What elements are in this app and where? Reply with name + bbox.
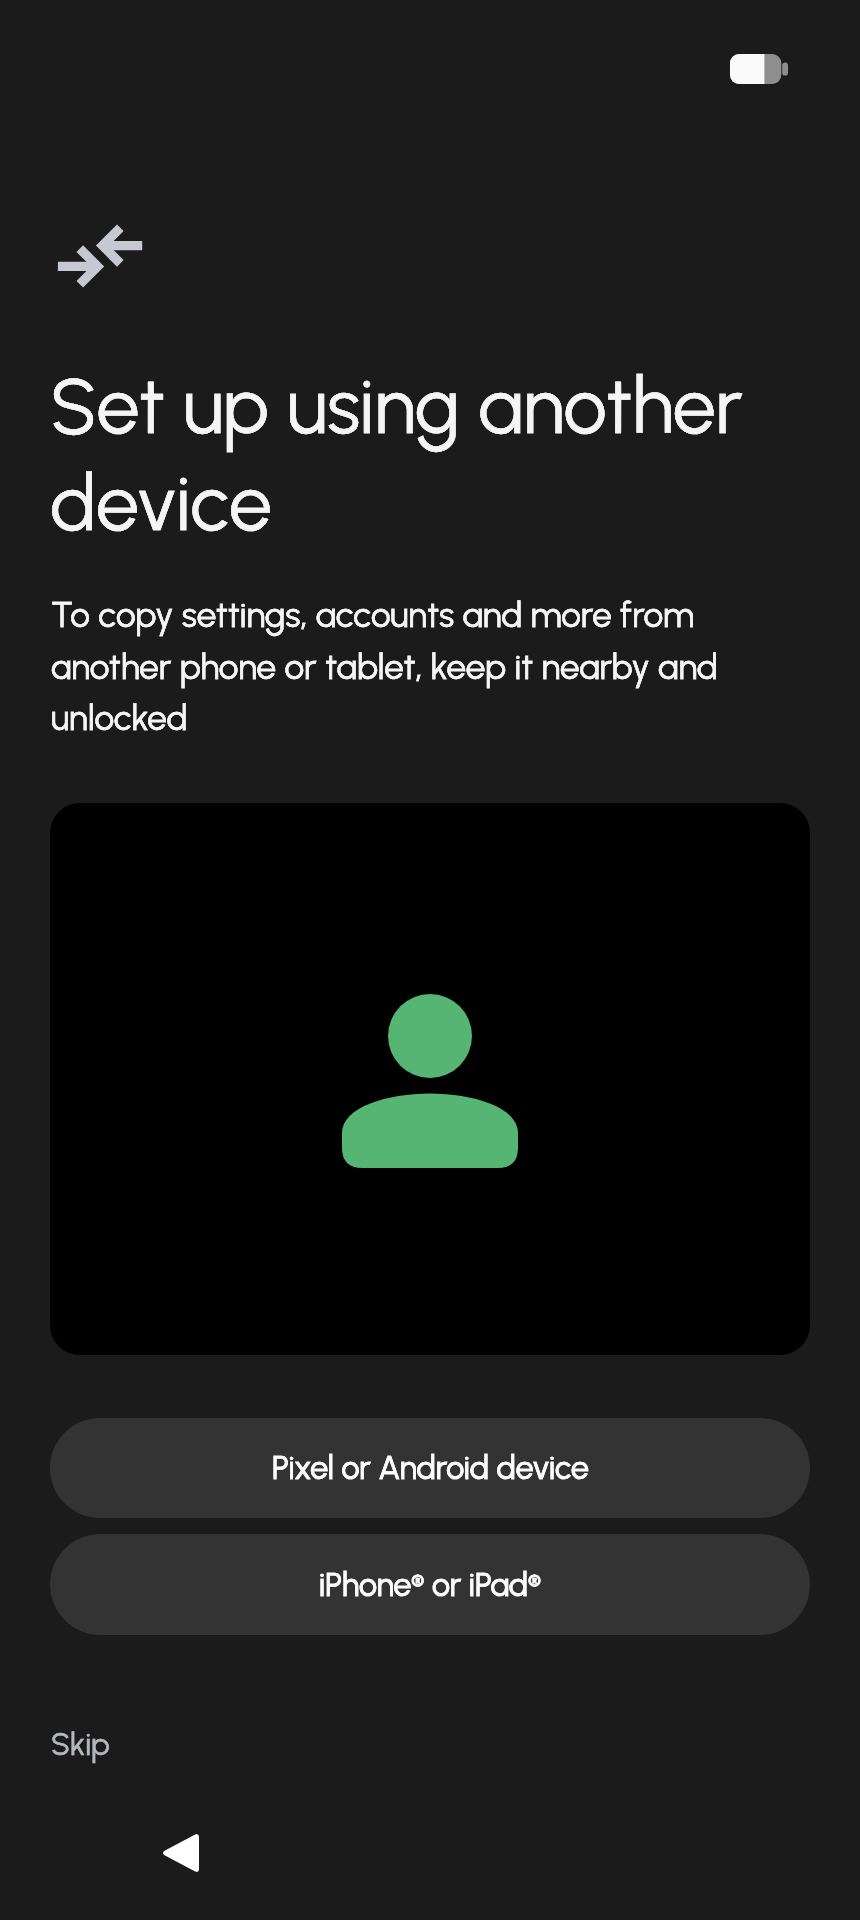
staticText: To copy settings, accounts and more from… — [51, 594, 741, 739]
button[interactable]: Skip — [36, 1716, 125, 1773]
button[interactable]: Pixel or Android device — [50, 1418, 810, 1518]
staticText: Pixel or Android device — [272, 1449, 589, 1487]
staticText: Pixel or Android device — [272, 1449, 589, 1487]
staticText: Skip — [51, 1726, 110, 1763]
staticText: iPhone® or iPad® — [319, 1566, 541, 1604]
staticText: Set up using another device — [50, 360, 810, 549]
staticText: To copy settings, accounts and more from… — [51, 594, 741, 739]
staticText: Skip — [51, 1726, 110, 1763]
staticText: iPhone® or iPad® — [319, 1566, 541, 1604]
staticText: Set up using another device — [50, 360, 810, 549]
button[interactable]: iPhone® or iPad® — [50, 1534, 810, 1635]
button[interactable]: Back — [124, 1814, 234, 1892]
